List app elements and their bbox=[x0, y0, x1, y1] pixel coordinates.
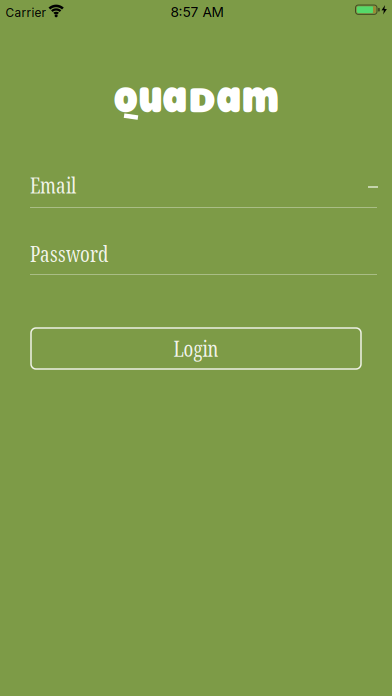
staticText: Carrier bbox=[5, 6, 45, 20]
staticText: Login bbox=[173, 334, 218, 363]
button[interactable]: Password bbox=[30, 239, 377, 275]
staticText: Email bbox=[30, 171, 76, 200]
button[interactable]: Email bbox=[30, 171, 377, 208]
staticText: D bbox=[192, 77, 212, 121]
staticText: am bbox=[216, 64, 278, 124]
staticText: 8:57 AM bbox=[170, 4, 223, 20]
staticText: Password bbox=[30, 239, 108, 268]
staticText: oua bbox=[113, 64, 187, 124]
button[interactable]: Login bbox=[31, 328, 361, 369]
